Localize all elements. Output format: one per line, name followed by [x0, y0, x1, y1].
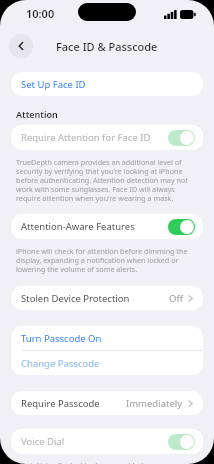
- staticText: Face ID & Passcode: [56, 39, 158, 54]
- button[interactable]: Voice Dial: [11, 429, 203, 454]
- staticText: Immediately: [126, 397, 183, 410]
- staticText: Music Voice Control is always enabled.: [16, 460, 198, 464]
- button[interactable]: Require Passcode: [11, 391, 203, 415]
- staticText: 10:00: [26, 6, 55, 21]
- staticText: Off: [169, 292, 183, 305]
- button[interactable]: Require Attention for Face ID: [11, 125, 203, 150]
- staticText: Require Attention for Face ID: [21, 131, 151, 144]
- button[interactable]: Back: [9, 34, 33, 58]
- staticText: Turn Passcode On: [21, 332, 102, 345]
- staticText: Voice Dial: [21, 435, 65, 448]
- staticText: iPhone will check for attention before d…: [16, 246, 198, 275]
- staticText: Set Up Face ID: [21, 78, 86, 91]
- staticText: Require Passcode: [21, 397, 100, 410]
- button[interactable]: Stolen Device Protection: [11, 286, 203, 310]
- button[interactable]: Attention-Aware Features: [11, 214, 203, 239]
- staticText: Change Passcode: [21, 357, 100, 370]
- staticText: Stolen Device Protection: [21, 292, 130, 305]
- staticText: Attention-Aware Features: [21, 220, 135, 233]
- button[interactable]: Change Passcode: [11, 351, 203, 375]
- staticText: TrueDepth camera provides an additional …: [16, 157, 198, 204]
- button[interactable]: Set Up Face ID: [11, 72, 203, 96]
- button[interactable]: Turn Passcode On: [11, 326, 203, 350]
- staticText: Attention: [16, 108, 58, 120]
